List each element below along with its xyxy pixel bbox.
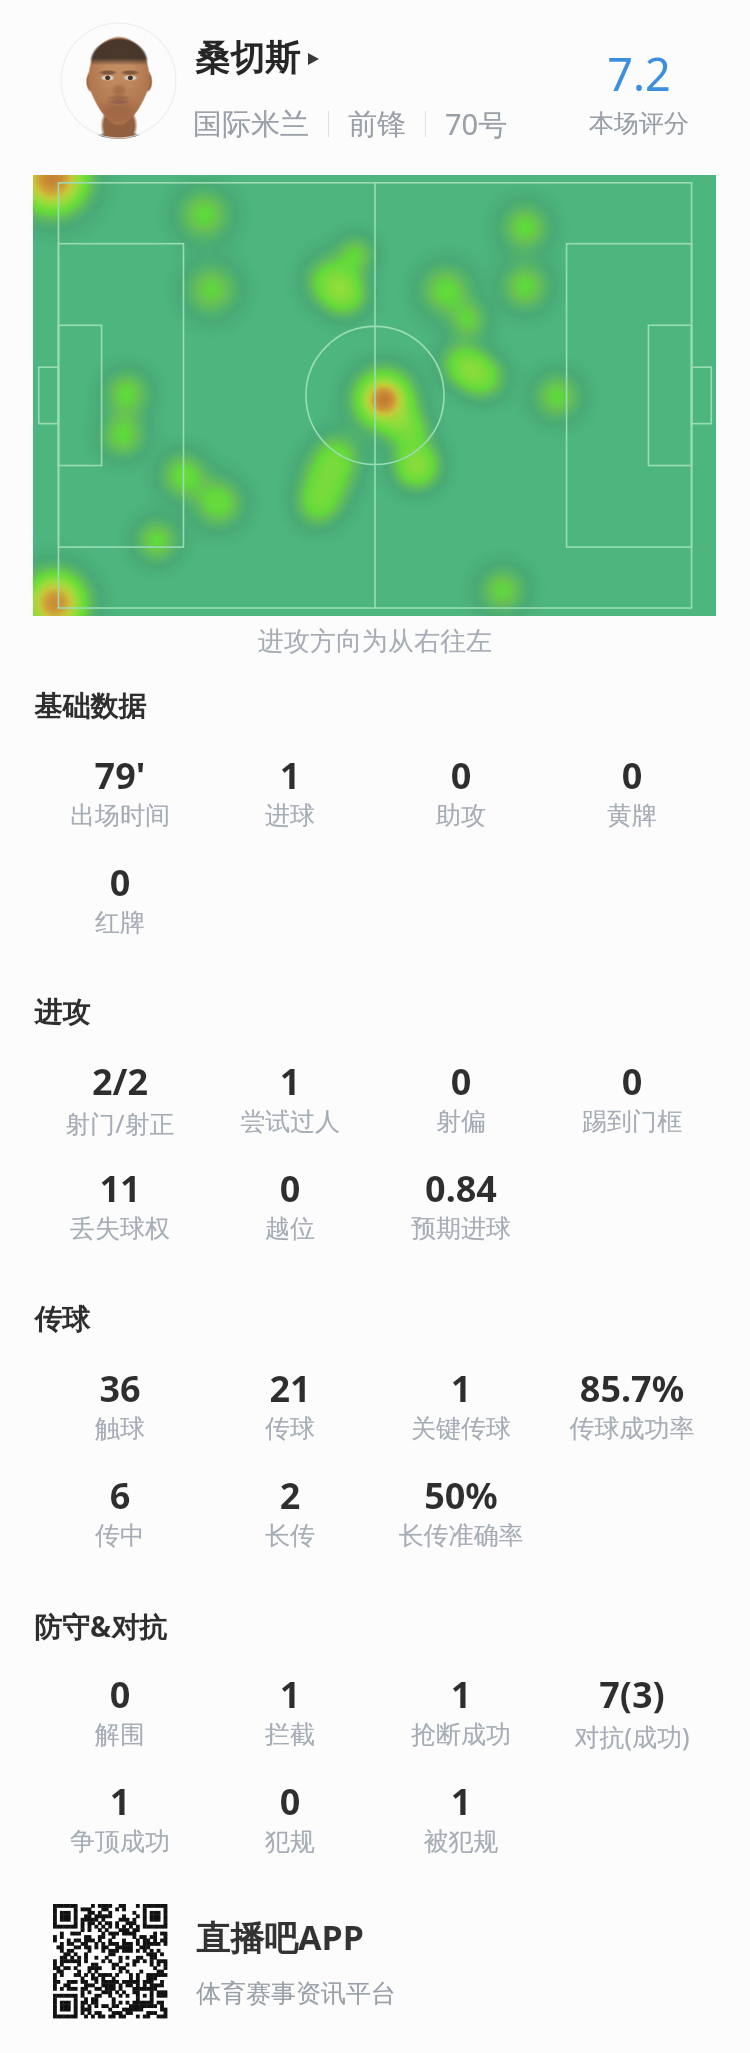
staticText: 进攻方向为从右往左 <box>0 625 750 658</box>
staticText: 丢失球权 <box>30 1213 210 1244</box>
staticText: 36 <box>30 1364 210 1413</box>
staticText: 1 <box>200 1670 380 1719</box>
staticText: 2/2 <box>30 1057 210 1106</box>
staticText: 被犯规 <box>371 1826 551 1857</box>
staticText: 传中 <box>30 1520 210 1551</box>
button[interactable] <box>542 737 722 829</box>
staticText: 防守&对抗 <box>34 1607 168 1645</box>
staticText: 桑切斯 <box>195 36 300 80</box>
staticText: 6 <box>30 1471 210 1520</box>
button[interactable] <box>200 1150 380 1242</box>
button[interactable] <box>371 1457 551 1549</box>
staticText: 预期进球 <box>371 1213 551 1244</box>
staticText: 争顶成功 <box>30 1826 210 1857</box>
button[interactable] <box>200 1350 380 1442</box>
staticText: 1 <box>371 1777 551 1826</box>
staticText: 1 <box>371 1364 551 1413</box>
staticText: 触球 <box>30 1413 210 1444</box>
staticText: 0 <box>371 1057 551 1106</box>
staticText: 70号 <box>445 104 508 144</box>
button[interactable]: 桑切斯 <box>195 36 319 80</box>
staticText: 长传 <box>200 1520 380 1551</box>
button[interactable] <box>30 1656 210 1748</box>
button[interactable] <box>30 1350 210 1442</box>
staticText: 解围 <box>30 1719 210 1750</box>
staticText: 体育赛事资讯平台 <box>196 1978 396 2009</box>
button[interactable] <box>371 1763 551 1855</box>
button[interactable] <box>30 1043 210 1135</box>
staticText: 7(3) <box>542 1670 722 1719</box>
button[interactable] <box>30 737 210 829</box>
staticText: 踢到门框 <box>542 1106 722 1137</box>
button[interactable] <box>371 737 551 829</box>
staticText: 越位 <box>200 1213 380 1244</box>
staticText: 11 <box>30 1164 210 1213</box>
staticText: 传球 <box>34 1302 90 1337</box>
button[interactable] <box>30 844 210 936</box>
staticText: 79' <box>30 751 210 800</box>
staticText: 进球 <box>200 800 380 831</box>
staticText: 射偏 <box>371 1106 551 1137</box>
staticText: 传球成功率 <box>542 1413 722 1444</box>
button[interactable] <box>542 1656 722 1748</box>
staticText: 0 <box>371 751 551 800</box>
button[interactable] <box>200 1043 380 1135</box>
staticText: 前锋 <box>348 106 406 143</box>
button[interactable] <box>30 1763 210 1855</box>
button[interactable] <box>0 1880 750 2053</box>
staticText: 拦截 <box>200 1719 380 1750</box>
staticText: 犯规 <box>200 1826 380 1857</box>
staticText: 1 <box>200 751 380 800</box>
staticText: 尝试过人 <box>200 1106 380 1137</box>
staticText: 0 <box>30 858 210 907</box>
staticText: 1 <box>200 1057 380 1106</box>
staticText: 0 <box>30 1670 210 1719</box>
staticText: 助攻 <box>371 800 551 831</box>
staticText: 直播吧APP <box>196 1914 364 1960</box>
staticText: 85.7% <box>542 1364 722 1413</box>
staticText: 长传准确率 <box>371 1520 551 1551</box>
staticText: 黄牌 <box>542 800 722 831</box>
staticText: 0 <box>200 1777 380 1826</box>
staticText: 0 <box>200 1164 380 1213</box>
staticText: 7.2 <box>584 43 694 104</box>
button[interactable] <box>542 1350 722 1442</box>
staticText: 出场时间 <box>30 800 210 831</box>
staticText: 0 <box>542 751 722 800</box>
staticText: 21 <box>200 1364 380 1413</box>
button[interactable] <box>371 1350 551 1442</box>
button[interactable] <box>371 1150 551 1242</box>
button[interactable] <box>542 1043 722 1135</box>
button[interactable] <box>200 1656 380 1748</box>
staticText: 关键传球 <box>371 1413 551 1444</box>
staticText: 2 <box>200 1471 380 1520</box>
button[interactable] <box>371 1656 551 1748</box>
button[interactable] <box>30 1457 210 1549</box>
staticText: 1 <box>371 1670 551 1719</box>
other: Player detail <box>308 53 319 65</box>
button[interactable] <box>200 1457 380 1549</box>
staticText: 红牌 <box>30 907 210 938</box>
button[interactable] <box>200 737 380 829</box>
staticText: 抢断成功 <box>371 1719 551 1750</box>
staticText: 基础数据 <box>34 689 146 724</box>
staticText: 0 <box>542 1057 722 1106</box>
staticText: 传球 <box>200 1413 380 1444</box>
staticText: 进攻 <box>34 995 90 1030</box>
staticText: 对抗(成功) <box>542 1719 722 1753</box>
staticText: 1 <box>30 1777 210 1826</box>
staticText: 本场评分 <box>584 108 694 139</box>
staticText: 射门/射正 <box>30 1106 210 1140</box>
button[interactable] <box>30 1150 210 1242</box>
staticText: 国际米兰 <box>193 106 309 143</box>
button[interactable] <box>371 1043 551 1135</box>
staticText: 50% <box>371 1471 551 1520</box>
staticText: 0.84 <box>371 1164 551 1213</box>
button[interactable] <box>200 1763 380 1855</box>
